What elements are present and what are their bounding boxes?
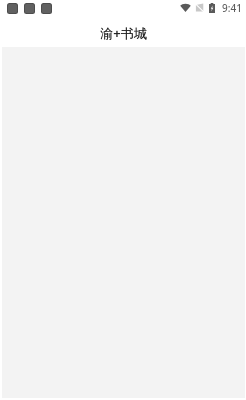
other: No signal bbox=[195, 3, 204, 12]
button[interactable]: 渝+书城 bbox=[0, 20, 246, 47]
other: Battery charging bbox=[209, 3, 215, 13]
staticText: 渝+书城 bbox=[100, 24, 147, 42]
staticText: 渝+书城 bbox=[100, 24, 147, 42]
staticText: 9:41 bbox=[222, 1, 242, 15]
other: Wi-Fi bbox=[180, 3, 191, 12]
